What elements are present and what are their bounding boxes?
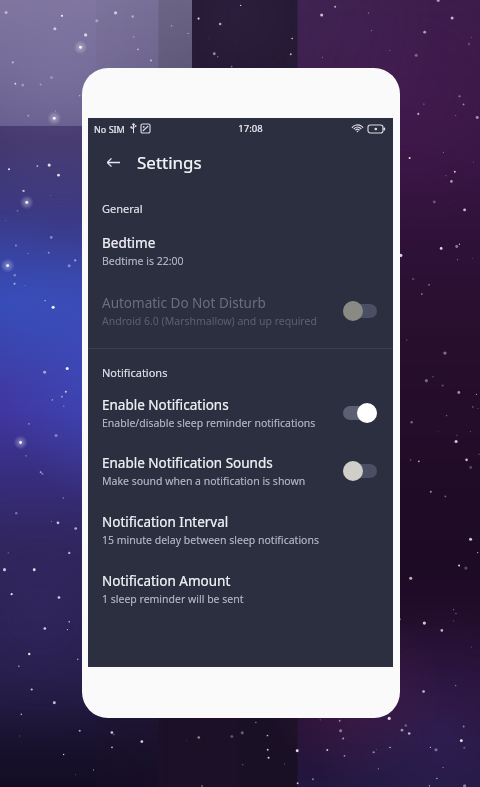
staticText: 15 minute delay between sleep notificati… [102, 533, 319, 547]
staticText: Enable Notifications [102, 396, 229, 414]
staticText: No SIM [94, 123, 125, 135]
button[interactable]: Toggle on [337, 397, 383, 429]
button[interactable]: Notification Interval [88, 502, 393, 561]
staticText: Bedtime [102, 234, 156, 252]
staticText: Notification Amount [102, 572, 231, 590]
staticText: Notifications [102, 365, 168, 380]
button[interactable]: Bedtime [88, 220, 393, 284]
staticText: Settings [137, 151, 202, 174]
staticText: Enable/disable sleep reminder notificati… [102, 416, 316, 430]
button[interactable]: Enable Notifications [88, 384, 393, 444]
button[interactable]: Toggle off [337, 455, 383, 487]
button[interactable]: Enable Notification Sounds [88, 444, 393, 502]
staticText: 17:08 [238, 122, 263, 135]
staticText: Enable Notification Sounds [102, 454, 273, 472]
staticText: General [102, 201, 143, 216]
staticText: Make sound when a notification is shown [102, 474, 306, 488]
staticText: Notification Interval [102, 513, 229, 531]
staticText: Automatic Do Not Disturb [102, 294, 266, 312]
button[interactable]: Notification Amount [88, 561, 393, 620]
staticText: 1 sleep reminder will be sent [102, 592, 244, 606]
button[interactable]: Back [97, 146, 129, 178]
staticText: Bedtime is 22:00 [102, 254, 184, 268]
button: Automatic Do Not Disturb [88, 284, 393, 342]
staticText: Android 6.0 (Marshmallow) and up require… [102, 314, 317, 328]
button: Toggle off [337, 295, 383, 327]
